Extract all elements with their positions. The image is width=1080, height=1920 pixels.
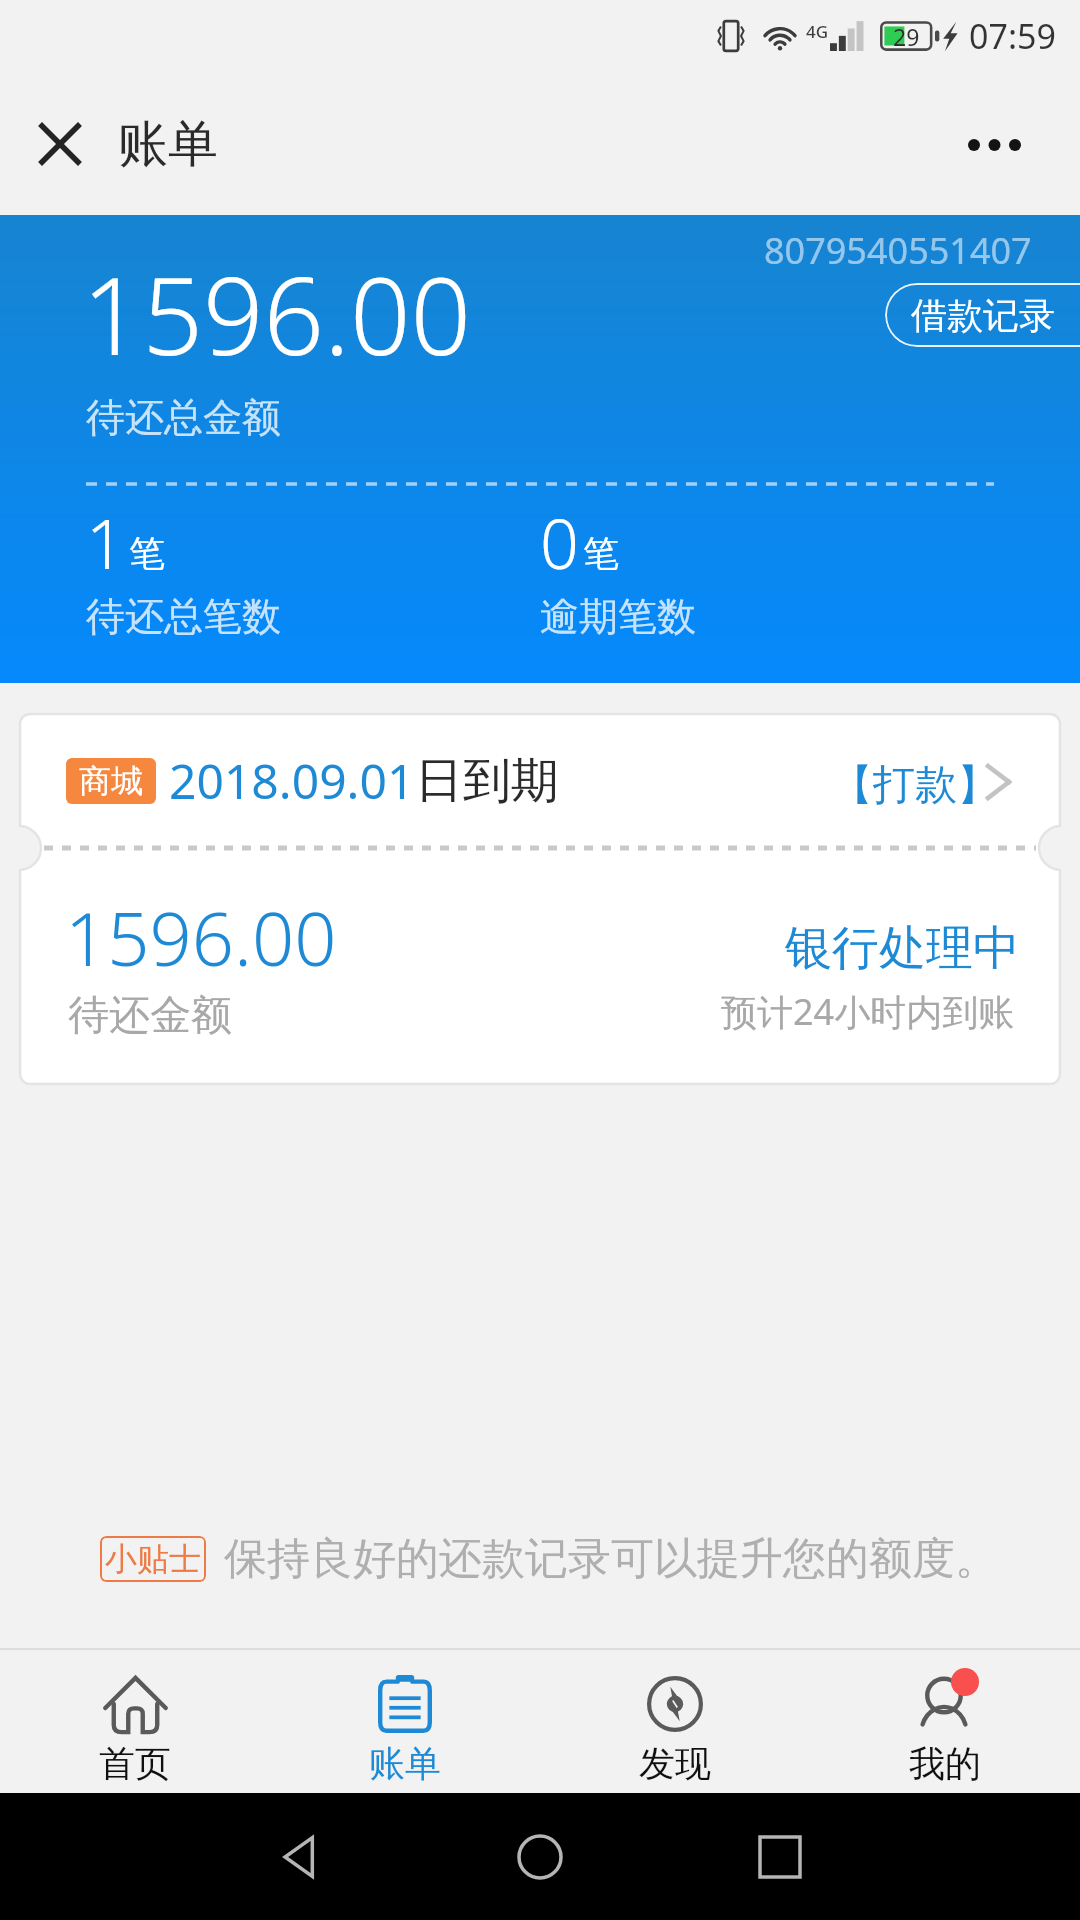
staticText: 小贴士	[105, 1539, 201, 1579]
staticText: 银行处理中	[785, 919, 1020, 978]
staticText: 待还总金额	[86, 393, 281, 442]
staticText: 4G	[806, 20, 829, 43]
button[interactable]: 账单	[270, 1650, 540, 1793]
staticText: 日到期	[415, 751, 559, 811]
staticText: 1	[86, 496, 125, 589]
staticText: 预计24小时内到账	[721, 987, 1015, 1036]
staticText: 【打款】	[831, 759, 999, 812]
staticText: 笔	[583, 531, 619, 576]
button[interactable]: 借款记录	[885, 283, 1080, 347]
staticText: 逾期笔数	[540, 592, 696, 641]
staticText: 借款记录	[911, 293, 1055, 338]
staticText: 07:59	[969, 13, 1056, 59]
button[interactable]: 发现	[540, 1650, 810, 1793]
button[interactable]: 商城	[19, 713, 1061, 848]
staticText: 29	[893, 21, 920, 52]
staticText: 8079540551407	[764, 226, 1032, 275]
staticText: 商城	[79, 761, 143, 801]
staticText: 保持良好的还款记录可以提升您的额度。	[224, 1532, 998, 1586]
staticText: 待还金额	[68, 990, 232, 1042]
staticText: 2018.09.01	[169, 748, 415, 813]
staticText: 1596.00	[65, 887, 337, 988]
staticText: 首页	[99, 1741, 171, 1786]
staticText: 发现	[639, 1741, 711, 1786]
staticText: 笔	[129, 531, 165, 576]
staticText: 账单	[118, 113, 218, 176]
button[interactable]: Close	[20, 104, 100, 184]
button[interactable]: 我的	[810, 1650, 1080, 1793]
button[interactable]: More options	[954, 105, 1034, 185]
staticText: 账单	[369, 1741, 441, 1786]
staticText: 0	[540, 496, 579, 589]
button[interactable]: 首页	[0, 1650, 270, 1793]
staticText: 1596.00	[82, 242, 472, 386]
staticText: 我的	[909, 1741, 981, 1786]
staticText: 待还总笔数	[86, 592, 281, 641]
